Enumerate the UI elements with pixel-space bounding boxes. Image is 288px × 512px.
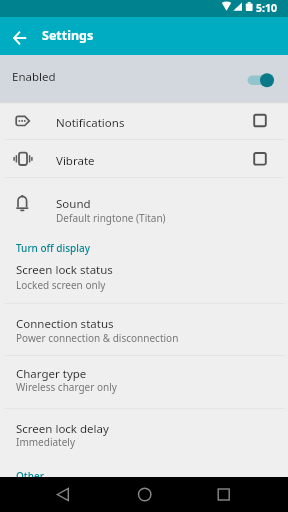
staticText: Notifications xyxy=(56,115,125,131)
button[interactable]: Connection status xyxy=(0,304,288,355)
staticText: Power connection & disconnection xyxy=(16,331,179,345)
button[interactable]: Vibrate xyxy=(0,140,288,178)
button[interactable] xyxy=(0,477,96,512)
button[interactable] xyxy=(9,27,31,49)
staticText: Settings xyxy=(42,27,94,44)
button[interactable]: Charger type xyxy=(0,355,288,407)
staticText: Other xyxy=(16,469,44,483)
button[interactable] xyxy=(192,477,288,512)
button[interactable]: Notifications xyxy=(0,102,288,140)
staticText: Sound xyxy=(56,196,91,212)
button[interactable] xyxy=(96,477,192,512)
staticText: Connection status xyxy=(16,316,114,332)
button[interactable]: Sound xyxy=(0,178,288,233)
staticText: Wireless charger only xyxy=(16,380,117,394)
button[interactable]: Screen lock delay xyxy=(0,408,288,460)
staticText: Enabled xyxy=(12,69,56,85)
button[interactable]: Screen lock status xyxy=(0,255,288,303)
button[interactable]: Enabled xyxy=(0,55,288,102)
staticText: Screen lock delay xyxy=(16,421,109,437)
staticText: Charger type xyxy=(16,366,87,382)
staticText: Screen lock status xyxy=(16,262,113,278)
staticText: Turn off display xyxy=(16,241,90,255)
staticText: Locked screen only xyxy=(16,278,106,292)
staticText: Immediately xyxy=(16,435,75,449)
staticText: Vibrate xyxy=(56,153,95,169)
staticText: 5:10 xyxy=(256,1,277,15)
staticText: Default ringtone (Titan) xyxy=(56,211,166,225)
